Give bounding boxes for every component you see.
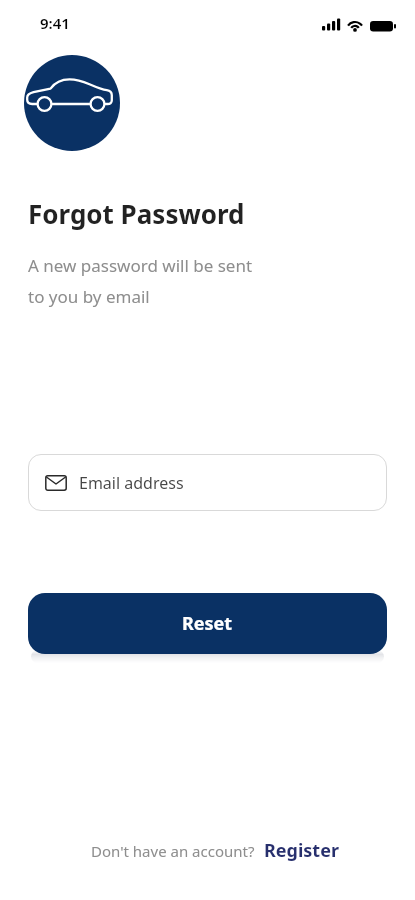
staticText: A new password will be sent to you by em… xyxy=(28,254,253,308)
staticText: Reset xyxy=(182,611,233,636)
button[interactable]: Reset xyxy=(28,593,387,654)
staticText: Forgot Password xyxy=(28,196,245,231)
staticText: 9:41 xyxy=(40,13,70,33)
staticText: Don't have an account? xyxy=(91,841,255,861)
staticText: Email address xyxy=(79,472,184,494)
button[interactable]: Email address xyxy=(28,454,387,511)
staticText: Register xyxy=(264,838,339,863)
button[interactable]: Register xyxy=(264,838,339,863)
